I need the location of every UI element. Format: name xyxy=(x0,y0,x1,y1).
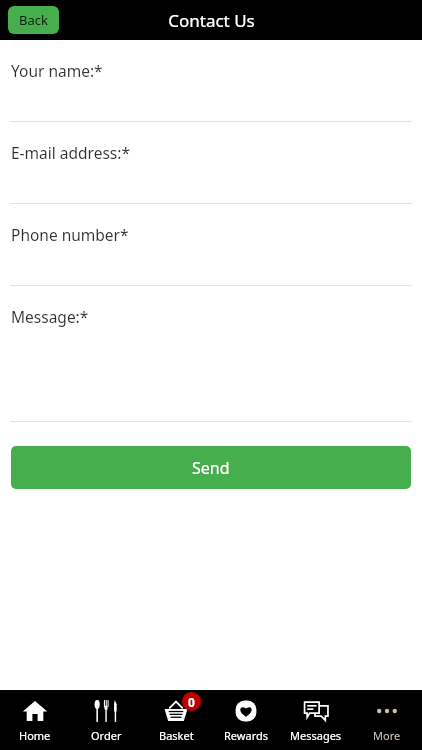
staticText: Home xyxy=(19,728,51,743)
button[interactable]: Basket xyxy=(141,690,211,750)
button[interactable]: Messages xyxy=(281,690,351,750)
staticText: Rewards xyxy=(224,728,268,743)
staticText: Messages xyxy=(290,728,342,743)
staticText: Send xyxy=(192,457,230,479)
button[interactable]: Send xyxy=(11,446,411,489)
staticText: Back xyxy=(19,11,48,29)
staticText: E-mail address:* xyxy=(11,142,130,163)
button[interactable]: Back xyxy=(8,6,59,34)
staticText: Basket xyxy=(159,728,194,743)
staticText: 0 xyxy=(188,694,195,710)
staticText: Contact Us xyxy=(168,9,255,32)
button[interactable]: Order xyxy=(71,690,141,750)
button[interactable]: More xyxy=(352,690,422,750)
staticText: Message:* xyxy=(11,306,89,327)
staticText: Your name:* xyxy=(11,60,103,81)
button[interactable]: Rewards xyxy=(211,690,281,750)
button[interactable]: Home xyxy=(0,690,70,750)
staticText: Order xyxy=(91,728,122,743)
staticText: Phone number* xyxy=(11,224,129,245)
staticText: More xyxy=(373,728,401,743)
